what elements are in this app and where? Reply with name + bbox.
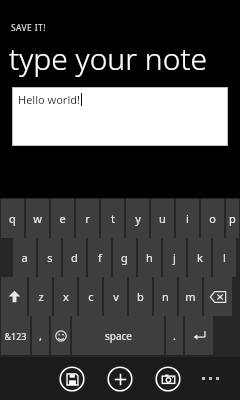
button[interactable]: u	[151, 199, 174, 238]
staticText: k	[197, 250, 203, 265]
staticText: l	[223, 250, 226, 265]
staticText: t	[111, 211, 115, 226]
staticText: x	[63, 289, 69, 304]
button[interactable]	[204, 277, 232, 316]
button[interactable]	[1, 277, 27, 316]
staticText: c	[88, 289, 94, 304]
staticText: g	[121, 250, 128, 265]
staticText: .	[173, 328, 176, 343]
button[interactable]: p	[226, 199, 239, 238]
button[interactable]: d	[63, 238, 86, 277]
staticText: Hello world!	[18, 92, 80, 107]
button[interactable]: j	[163, 238, 186, 277]
staticText: p	[229, 211, 236, 226]
staticText: y	[135, 211, 141, 226]
staticText: ,	[39, 328, 42, 343]
button[interactable]: s	[38, 238, 61, 277]
button[interactable]: m	[179, 277, 202, 316]
button[interactable]: Save	[59, 366, 85, 392]
staticText: r	[85, 211, 90, 226]
button[interactable]: a	[13, 238, 36, 277]
button[interactable]: n	[154, 277, 177, 316]
button[interactable]: ,	[32, 316, 49, 355]
staticText: h	[146, 250, 153, 265]
button[interactable]: w	[26, 199, 49, 238]
staticText: s	[47, 250, 53, 265]
staticText: z	[38, 289, 44, 304]
button[interactable]: t	[101, 199, 124, 238]
staticText: o	[209, 211, 216, 226]
staticText: d	[71, 250, 78, 265]
staticText: u	[159, 211, 166, 226]
staticText: space	[105, 329, 132, 343]
button[interactable]: .	[166, 316, 183, 355]
button[interactable]	[185, 316, 213, 355]
staticText: a	[21, 250, 28, 265]
staticText: i	[186, 211, 189, 226]
button[interactable]: r	[76, 199, 99, 238]
button[interactable]	[51, 316, 70, 355]
button[interactable]: f	[88, 238, 111, 277]
staticText: SAVE IT!	[11, 22, 46, 34]
button[interactable]: e	[51, 199, 74, 238]
button[interactable]: z	[29, 277, 52, 316]
staticText: v	[113, 289, 119, 304]
button[interactable]: x	[54, 277, 77, 316]
button[interactable]: c	[79, 277, 102, 316]
button[interactable]: &123	[1, 316, 30, 355]
button[interactable]: q	[1, 199, 24, 238]
button[interactable]: v	[104, 277, 127, 316]
staticText: n	[162, 289, 169, 304]
button[interactable]: space	[72, 316, 164, 355]
button[interactable]: i	[176, 199, 199, 238]
staticText: w	[33, 211, 42, 226]
staticText: &123	[4, 330, 27, 342]
button[interactable]: Add	[107, 366, 133, 392]
button[interactable]: Hello world!	[12, 87, 228, 146]
button[interactable]: h	[138, 238, 161, 277]
staticText: b	[137, 289, 144, 304]
button[interactable]: k	[188, 238, 211, 277]
button[interactable]: o	[201, 199, 224, 238]
staticText: q	[9, 211, 16, 226]
button[interactable]: b	[129, 277, 152, 316]
button[interactable]: y	[126, 199, 149, 238]
staticText: j	[173, 250, 176, 265]
staticText: f	[98, 250, 102, 265]
staticText: e	[59, 211, 66, 226]
button[interactable]: l	[213, 238, 236, 277]
staticText: m	[185, 289, 196, 304]
button[interactable]: g	[113, 238, 136, 277]
button[interactable]: Camera	[155, 366, 181, 392]
button[interactable]: More options	[194, 371, 227, 386]
staticText: type your note	[9, 38, 208, 79]
